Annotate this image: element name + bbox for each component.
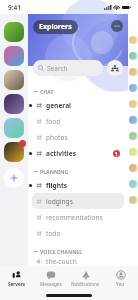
staticText: You <box>116 281 125 287</box>
button[interactable]: Server <box>4 142 24 162</box>
button[interactable]: food <box>32 113 124 129</box>
button[interactable]: Add a server <box>4 168 24 188</box>
button[interactable]: Explorers <box>33 20 78 34</box>
staticText: Notifications <box>71 281 100 287</box>
staticText: lodgings <box>46 197 120 206</box>
button[interactable]: Server <box>4 94 24 114</box>
staticText: Messages <box>40 281 62 287</box>
button[interactable]: Members <box>107 60 123 76</box>
staticText: Explorers <box>39 22 72 32</box>
button[interactable]: lodgings <box>32 193 124 209</box>
button[interactable]: VOICE CHANNEL <box>28 245 128 257</box>
staticText: todo <box>46 229 120 238</box>
button[interactable]: Search <box>33 60 103 76</box>
button[interactable]: todo <box>32 225 124 241</box>
staticText: food <box>46 117 120 126</box>
staticText: general <box>46 101 120 110</box>
staticText: the-couch <box>46 257 120 266</box>
button[interactable]: Servers <box>0 266 34 290</box>
button[interactable]: PLANNING <box>28 165 128 177</box>
button[interactable]: the-couch <box>32 257 124 266</box>
button[interactable]: flights <box>32 177 124 193</box>
button[interactable]: activities <box>32 145 124 161</box>
button[interactable]: Server <box>4 70 24 90</box>
button[interactable]: Notifications <box>68 266 103 290</box>
button[interactable]: Server <box>4 22 24 42</box>
staticText: flights <box>46 181 120 190</box>
button[interactable]: Server <box>4 118 24 138</box>
staticText: 1 <box>115 151 118 157</box>
staticText: CHAT <box>40 88 54 95</box>
staticText: VOICE CHANNEL <box>40 248 83 255</box>
staticText: Servers <box>8 281 26 287</box>
staticText: photos <box>46 133 120 142</box>
button[interactable]: general <box>32 97 124 113</box>
staticText: 9:41 <box>8 3 21 12</box>
button[interactable]: Server <box>4 46 24 66</box>
button[interactable]: More options <box>111 20 123 32</box>
button[interactable]: photos <box>32 129 124 145</box>
button[interactable]: Messages <box>34 266 68 290</box>
staticText: recommendations <box>46 213 120 222</box>
staticText: activities <box>46 149 113 158</box>
staticText: PLANNING <box>40 168 69 175</box>
button[interactable]: You <box>103 266 138 290</box>
button[interactable]: recommendations <box>32 209 124 225</box>
button[interactable]: CHAT <box>28 85 128 97</box>
staticText: Search <box>47 64 68 73</box>
